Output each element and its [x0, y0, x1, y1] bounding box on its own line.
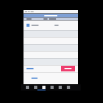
button[interactable]: Tab 3 — [40, 84, 48, 90]
button[interactable]: Tab 2 — [32, 84, 40, 90]
button[interactable]: Tab 5 — [56, 84, 64, 90]
button[interactable] — [61, 66, 75, 71]
button[interactable]: Tab 1 — [23, 84, 32, 90]
button[interactable]: Tab 6 — [64, 84, 73, 90]
button[interactable]: Tab 4 — [48, 84, 56, 90]
